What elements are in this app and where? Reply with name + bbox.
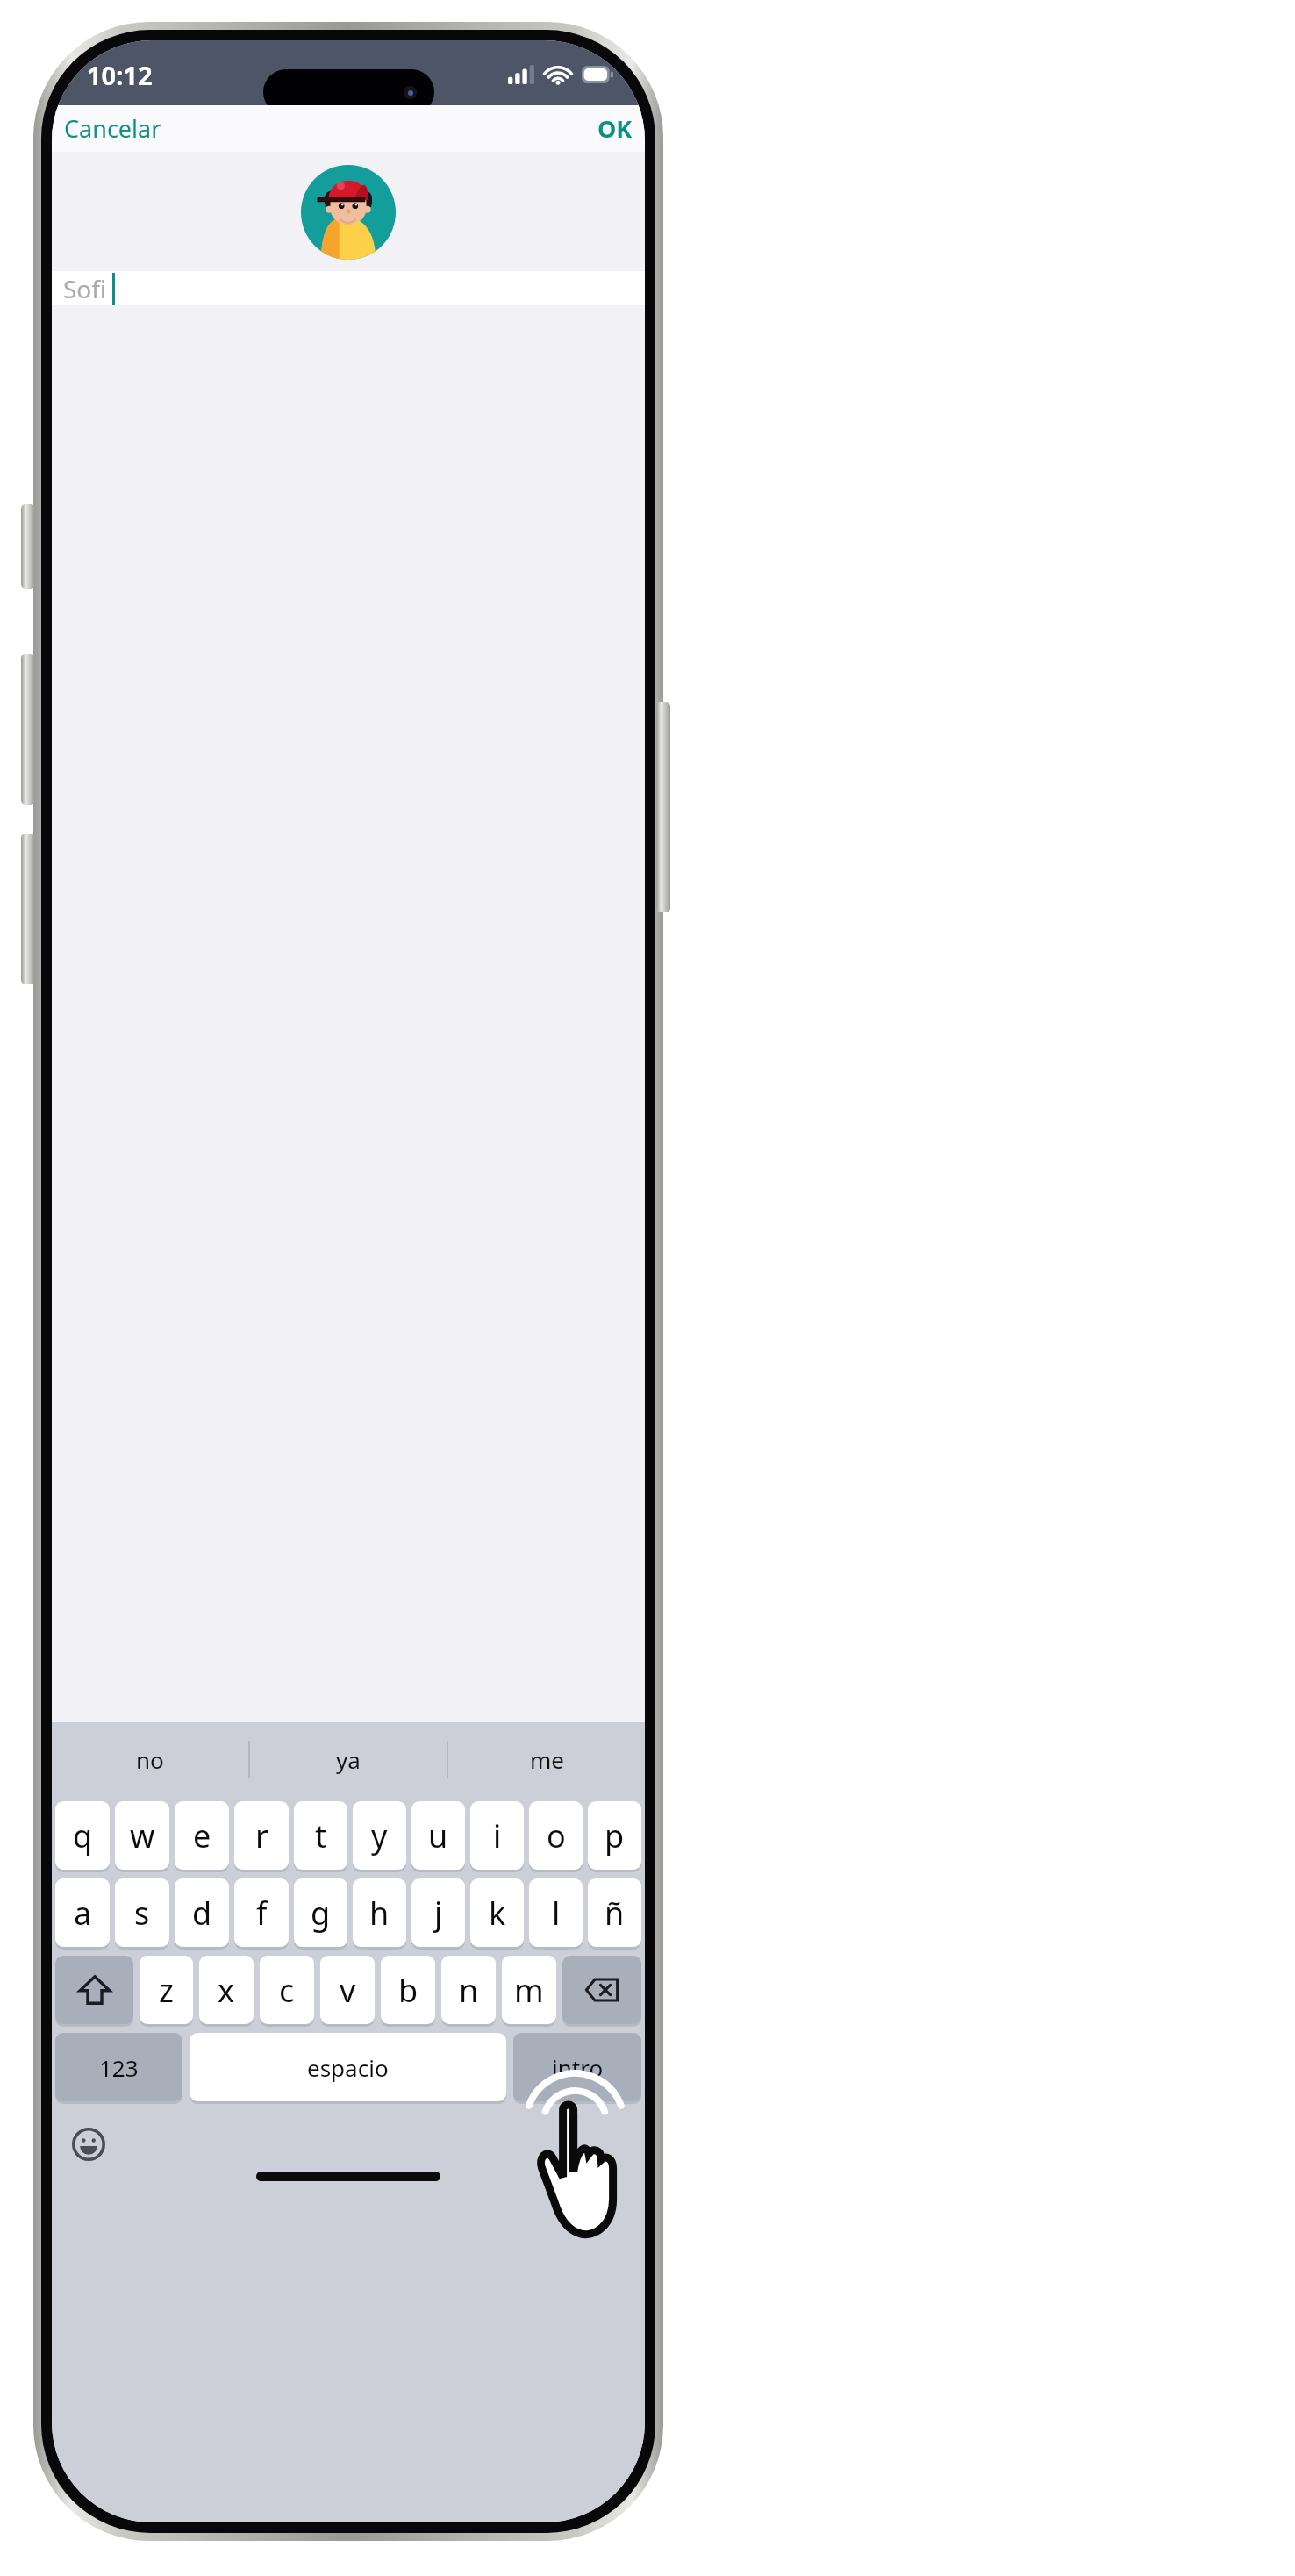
button[interactable]: f	[234, 1878, 289, 1947]
button[interactable]: OK	[585, 107, 645, 150]
button[interactable]: no	[52, 1722, 248, 1796]
button[interactable]: 123	[55, 2033, 182, 2101]
staticText: l	[552, 1892, 561, 1935]
button[interactable]: o	[529, 1801, 583, 1870]
staticText: no	[136, 1744, 164, 1775]
staticText: e	[193, 1814, 211, 1857]
staticText: v	[340, 1969, 356, 2012]
button[interactable]: a	[55, 1878, 110, 1947]
other: Cambiar avatar	[301, 165, 396, 260]
button[interactable]: m	[502, 1956, 556, 2024]
button[interactable]: p	[588, 1801, 641, 1870]
button[interactable]: me	[448, 1722, 645, 1796]
staticText: s	[134, 1892, 150, 1935]
staticText: c	[279, 1969, 295, 2012]
staticText: u	[428, 1814, 448, 1857]
staticText: 10:12	[87, 58, 153, 92]
staticText: me	[530, 1744, 564, 1775]
button[interactable]: s	[115, 1878, 169, 1947]
button[interactable]: espacio	[190, 2033, 506, 2101]
button[interactable]: Cancelar	[52, 107, 174, 150]
button[interactable]: Mayúsculas	[55, 1956, 133, 2024]
staticText: d	[192, 1892, 212, 1935]
staticText: f	[256, 1892, 268, 1935]
staticText: p	[605, 1814, 625, 1857]
staticText: y	[371, 1814, 388, 1857]
staticText: n	[459, 1969, 479, 2012]
staticText: Sofi	[63, 272, 107, 305]
button[interactable]: Cambiar avatar	[52, 152, 645, 271]
button[interactable]: y	[353, 1801, 406, 1870]
staticText: t	[315, 1814, 326, 1857]
button[interactable]: c	[260, 1956, 314, 2024]
staticText: r	[255, 1814, 268, 1857]
button[interactable]: t	[294, 1801, 347, 1870]
staticText: 123	[99, 2052, 139, 2083]
button[interactable]: intro	[513, 2033, 641, 2101]
button[interactable]: n	[441, 1956, 496, 2024]
staticText: intro	[552, 2052, 604, 2083]
staticText: b	[398, 1969, 419, 2012]
button[interactable]: j	[411, 1878, 465, 1947]
staticText: m	[514, 1969, 544, 2012]
staticText: w	[130, 1814, 155, 1857]
staticText: k	[489, 1892, 506, 1935]
staticText: Toca para cambiar el avatar	[52, 278, 645, 304]
staticText: x	[218, 1969, 235, 2012]
staticText: ñ	[605, 1892, 625, 1935]
button[interactable]: z	[140, 1956, 193, 2024]
staticText: g	[311, 1892, 331, 1935]
staticText: OK	[597, 112, 633, 145]
button[interactable]: u	[411, 1801, 465, 1870]
button[interactable]: r	[234, 1801, 289, 1870]
button[interactable]: ñ	[588, 1878, 641, 1947]
button[interactable]: Sofi	[52, 271, 645, 305]
button[interactable]: b	[381, 1956, 435, 2024]
staticText: o	[547, 1814, 566, 1857]
button[interactable]: d	[175, 1878, 229, 1947]
staticText: a	[74, 1892, 92, 1935]
button[interactable]: h	[353, 1878, 406, 1947]
button[interactable]: Emoji	[69, 2125, 108, 2164]
staticText: i	[493, 1814, 502, 1857]
staticText: h	[369, 1892, 390, 1935]
button[interactable]: i	[470, 1801, 524, 1870]
button[interactable]: w	[115, 1801, 169, 1870]
button[interactable]: ya	[250, 1722, 447, 1796]
staticText: ya	[336, 1744, 361, 1775]
staticText: z	[159, 1969, 174, 2012]
staticText: Cancelar	[64, 112, 161, 145]
button[interactable]: g	[294, 1878, 347, 1947]
button[interactable]: q	[55, 1801, 110, 1870]
staticText: espacio	[307, 2052, 389, 2083]
button[interactable]: v	[320, 1956, 375, 2024]
button[interactable]: x	[199, 1956, 254, 2024]
staticText: q	[73, 1814, 93, 1857]
staticText: j	[434, 1892, 443, 1935]
button[interactable]: k	[470, 1878, 524, 1947]
button[interactable]: l	[529, 1878, 583, 1947]
button[interactable]: e	[175, 1801, 229, 1870]
button[interactable]: Borrar	[562, 1956, 641, 2024]
